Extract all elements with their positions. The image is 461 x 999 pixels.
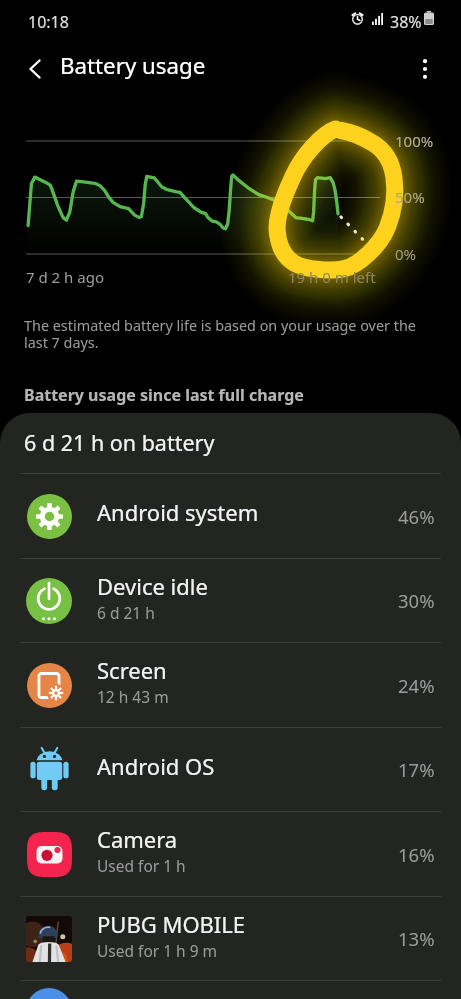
staticText: Android OS	[97, 751, 215, 781]
button[interactable]: Camera	[0, 812, 461, 896]
button[interactable]: PUBG MOBILE	[0, 897, 461, 980]
staticText: 16%	[398, 842, 435, 867]
staticText: 24%	[398, 673, 435, 698]
button[interactable]: Android OS	[0, 728, 461, 811]
staticText: Screen	[97, 655, 167, 685]
staticText: 0%	[395, 244, 417, 264]
staticText: Device idle	[97, 571, 208, 601]
staticText: 46%	[398, 504, 435, 529]
staticText: 30%	[398, 588, 435, 613]
staticText: 19 h 0 m left	[288, 267, 376, 287]
button[interactable]: Android system	[0, 474, 461, 558]
staticText: 6 d 21 h on battery	[24, 428, 215, 457]
staticText: Android system	[97, 497, 259, 527]
staticText: 6 d 21 h	[97, 602, 155, 623]
staticText: The estimated battery life is based on y…	[24, 316, 416, 352]
button[interactable]: Device idle	[0, 559, 461, 642]
staticText: Used for 1 h 9 m	[97, 940, 218, 961]
staticText: 17%	[398, 757, 435, 782]
button[interactable]: Navigate up	[9, 43, 61, 95]
staticText: PUBG MOBILE	[97, 909, 246, 939]
staticText: 50%	[395, 187, 425, 207]
staticText: 13%	[398, 926, 435, 951]
staticText: 12 h 43 m	[97, 686, 169, 707]
button[interactable]: Screen	[0, 643, 461, 727]
staticText: 7 d 2 h ago	[26, 267, 104, 287]
staticText: Battery usage since last full charge	[24, 384, 304, 406]
staticText: Camera	[97, 824, 178, 854]
button[interactable]: More options	[399, 43, 451, 95]
staticText: 38%	[390, 11, 422, 33]
staticText: Used for 1 h	[97, 855, 186, 876]
staticText: 10:18	[28, 11, 69, 33]
staticText: Battery usage	[60, 50, 206, 80]
staticText: 100%	[395, 131, 434, 151]
button[interactable]: Samsung Music	[0, 981, 461, 999]
